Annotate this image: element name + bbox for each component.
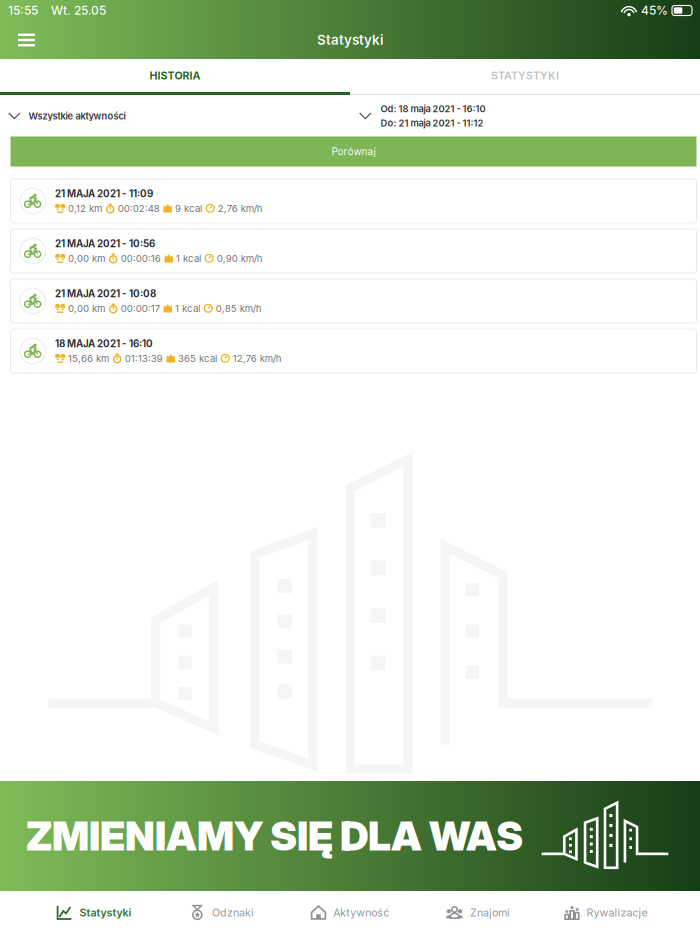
staticText: Porównaj: [331, 145, 375, 158]
staticText: 0,00 km: [68, 253, 105, 264]
button[interactable]: 18 MAJA 2021 - 16:10: [10, 329, 696, 373]
staticText: 00:00:16: [121, 253, 161, 264]
staticText: 365 kcal: [178, 353, 217, 364]
staticText: 0,00 km: [68, 303, 105, 314]
staticText: 18 MAJA 2021 - 16:10: [55, 338, 153, 350]
staticText: Wszystkie aktywności: [29, 110, 126, 122]
staticText: 9 kcal: [175, 203, 202, 214]
staticText: Statystyki: [79, 906, 131, 919]
staticText: Znajomi: [470, 906, 510, 919]
staticText: 0,85 km/h: [216, 303, 262, 314]
staticText: 1 kcal: [176, 253, 201, 264]
staticText: Rywalizacje: [586, 906, 647, 919]
button[interactable]: 21 MAJA 2021 - 11:09: [10, 179, 696, 223]
button[interactable]: HISTORIA: [0, 59, 350, 92]
button[interactable]: Porównaj: [10, 136, 696, 166]
staticText: 0,12 km: [68, 203, 102, 214]
staticText: 15,66 km: [68, 353, 109, 364]
button[interactable]: Od: 18 maja 2021 - 16:10: [350, 95, 700, 136]
button[interactable]: Odznaki: [158, 891, 286, 934]
staticText: 12,76 km/h: [233, 353, 282, 364]
staticText: Odznaki: [212, 906, 254, 919]
staticText: Do: 21 maja 2021 - 11:12: [381, 117, 484, 129]
staticText: 01:13:39: [125, 353, 163, 364]
staticText: 21 MAJA 2021 - 11:09: [55, 188, 153, 200]
staticText: Aktywność: [333, 906, 389, 919]
button[interactable]: Aktywność: [286, 891, 414, 934]
button[interactable]: STATYSTYKI: [350, 59, 700, 92]
staticText: STATYSTYKI: [491, 69, 559, 82]
button[interactable]: 21 MAJA 2021 - 10:08: [10, 279, 696, 323]
staticText: Od: 18 maja 2021 - 16:10: [381, 103, 486, 114]
staticText: Wt. 25.05: [51, 3, 106, 18]
staticText: Statystyki: [317, 32, 383, 48]
button[interactable]: Wszystkie aktywności: [0, 95, 350, 136]
staticText: 1 kcal: [175, 303, 200, 314]
staticText: ZMIENIAMY SIĘ DLA WAS: [26, 812, 523, 860]
staticText: 15:55: [8, 3, 38, 18]
staticText: 45%: [641, 3, 668, 18]
button[interactable]: Menu: [9, 25, 44, 55]
staticText: 21 MAJA 2021 - 10:08: [55, 288, 156, 300]
staticText: 00:02:48: [118, 203, 160, 214]
staticText: 00:00:17: [121, 303, 160, 314]
button[interactable]: 21 MAJA 2021 - 10:56: [10, 229, 696, 273]
staticText: 2,76 km/h: [218, 203, 263, 214]
staticText: 21 MAJA 2021 - 10:56: [55, 238, 155, 250]
button[interactable]: Rywalizacje: [542, 891, 670, 934]
button[interactable]: Znajomi: [414, 891, 542, 934]
staticText: HISTORIA: [149, 69, 200, 82]
button[interactable]: Statystyki: [30, 891, 158, 934]
staticText: 0,90 km/h: [217, 253, 263, 264]
